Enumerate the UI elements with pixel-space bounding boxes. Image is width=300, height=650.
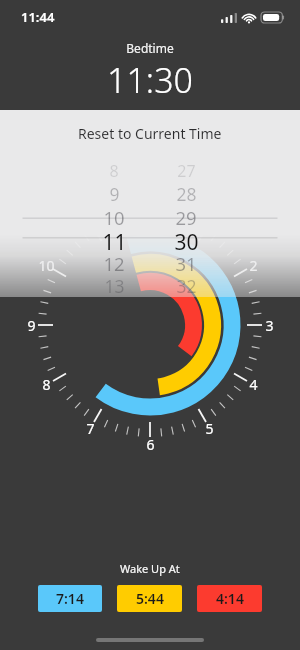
staticText: 8 xyxy=(109,160,119,182)
button[interactable]: 5:44 xyxy=(117,585,182,612)
staticText: 6 xyxy=(146,435,155,454)
staticText: 3 xyxy=(265,316,274,335)
staticText: 28 xyxy=(176,182,197,205)
staticText: 7:14 xyxy=(56,589,84,608)
staticText: Bedtime xyxy=(0,40,300,56)
staticText: 4 xyxy=(249,375,258,394)
staticText: 5:44 xyxy=(136,589,164,608)
button[interactable]: 4:14 xyxy=(197,585,262,612)
staticText: 11 xyxy=(102,228,127,251)
staticText: 4:14 xyxy=(216,589,244,608)
staticText: 11:44 xyxy=(21,8,55,26)
staticText: 10 xyxy=(38,256,55,275)
staticText: 30 xyxy=(174,228,199,251)
staticText: 29 xyxy=(175,205,197,228)
staticText: 2 xyxy=(249,256,258,275)
staticText: 10 xyxy=(103,205,125,228)
staticText: 7 xyxy=(86,419,95,438)
button[interactable]: Reset to Current Time xyxy=(68,121,232,146)
button[interactable]: 7:14 xyxy=(38,585,102,612)
staticText: Wake Up At xyxy=(120,561,180,576)
staticText: 32 xyxy=(176,274,197,297)
staticText: 11:30 xyxy=(0,57,300,103)
staticText: 11 xyxy=(82,212,99,231)
staticText: 5 xyxy=(205,419,214,438)
staticText: 12 xyxy=(103,251,125,274)
staticText: 27 xyxy=(177,160,196,182)
staticText: 8 xyxy=(42,375,51,394)
staticText: 9 xyxy=(27,316,36,335)
staticText: 1 xyxy=(205,212,214,231)
staticText: 9 xyxy=(109,182,120,205)
staticText: Reset to Current Time xyxy=(78,124,222,143)
staticText: 13 xyxy=(104,274,125,297)
staticText: 31 xyxy=(175,251,197,274)
